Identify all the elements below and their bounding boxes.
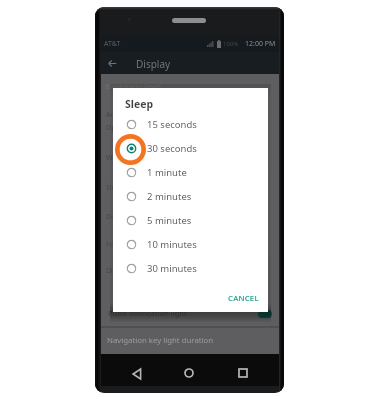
staticText: CANCEL — [228, 293, 259, 304]
staticText: Optimise the screen — [106, 123, 172, 133]
button[interactable]: Navigate up — [105, 56, 120, 71]
button[interactable]: 30 seconds — [113, 136, 268, 160]
staticText: Navigation key light duration — [107, 335, 214, 346]
staticText: Display size — [106, 266, 145, 276]
staticText: Display — [136, 57, 171, 71]
staticText: Daydream — [106, 212, 141, 222]
button[interactable]: 15 seconds — [113, 112, 268, 136]
staticText: Adaptive brightness — [106, 110, 172, 120]
staticText: 1 minute — [147, 166, 187, 179]
staticText: 5 minutes — [147, 214, 192, 227]
button[interactable]: 2 minutes — [113, 184, 268, 208]
button[interactable]: 1 minute — [113, 160, 268, 184]
button[interactable]: 5 minutes — [113, 208, 268, 232]
staticText: 30 minutes — [147, 262, 197, 275]
staticText: 12:00 PM — [245, 39, 276, 49]
staticText: 30 seconds — [147, 142, 197, 155]
staticText: Brightness level — [105, 81, 161, 91]
button[interactable]: 30 minutes — [113, 256, 268, 280]
staticText: AT&T — [104, 39, 121, 49]
staticText: Wallpaper — [106, 153, 140, 163]
staticText: Sleep — [106, 183, 124, 193]
staticText: 2 minutes — [147, 190, 192, 203]
button[interactable]: Recent apps — [235, 365, 251, 381]
button[interactable]: 10 minutes — [113, 232, 268, 256]
staticText: Pulse notification light — [108, 308, 187, 318]
staticText: 100% — [223, 40, 239, 48]
staticText: 10 minutes — [147, 238, 197, 251]
button[interactable]: Home — [181, 365, 197, 381]
button[interactable]: Back — [129, 366, 145, 382]
staticText: Font size — [106, 240, 135, 250]
button[interactable]: CANCEL — [223, 288, 264, 309]
staticText: 15 seconds — [147, 118, 197, 131]
staticText: Sleep — [125, 97, 154, 111]
